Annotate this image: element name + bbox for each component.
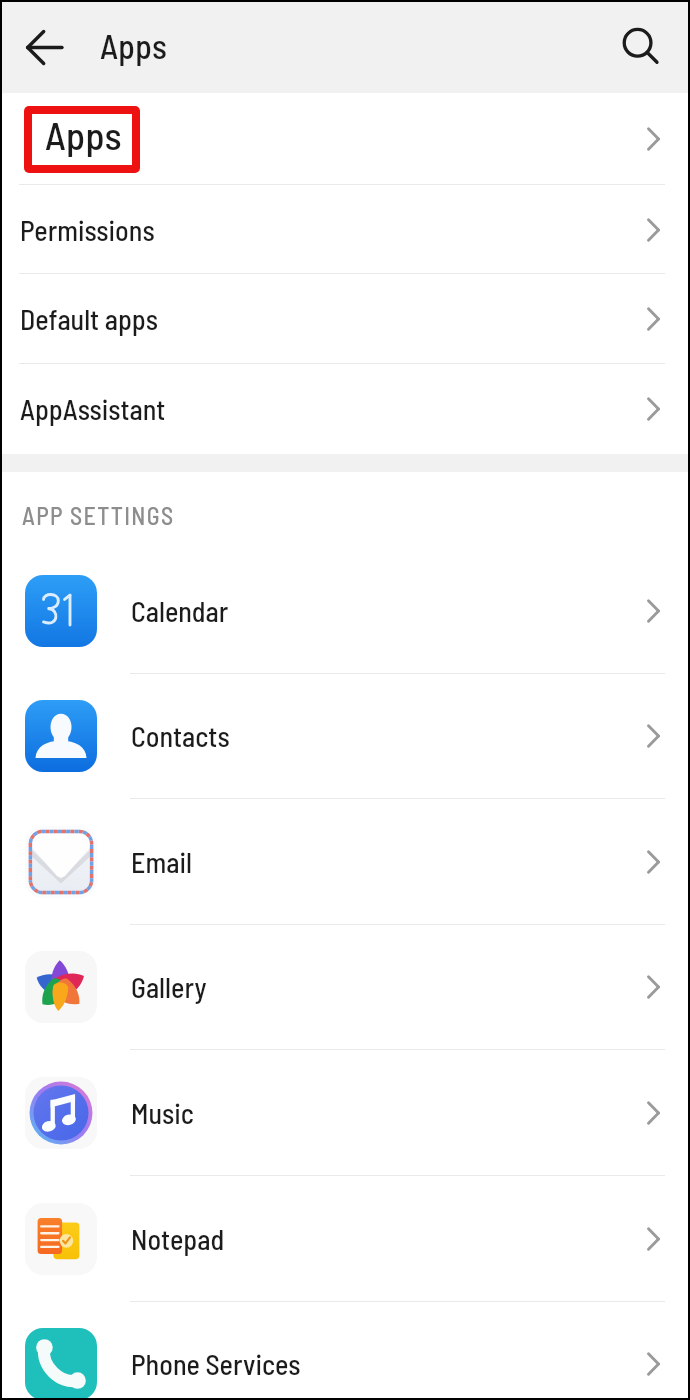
button[interactable]: Search: [604, 11, 676, 83]
staticText: Contacts: [131, 719, 230, 753]
staticText: Email: [131, 845, 192, 879]
button[interactable]: AppAssistant: [0, 364, 690, 454]
button[interactable]: Contacts: [0, 674, 690, 799]
button[interactable]: Notepad: [0, 1176, 690, 1302]
staticText: APP SETTINGS: [22, 501, 175, 530]
staticText: Permissions: [20, 213, 155, 247]
button[interactable]: Email: [0, 799, 690, 925]
staticText: Apps: [45, 111, 122, 158]
button[interactable]: Calendar: [0, 549, 690, 674]
staticText: Music: [131, 1096, 194, 1130]
staticText: Apps: [100, 25, 167, 66]
staticText: Default apps: [20, 302, 158, 336]
staticText: Phone Services: [131, 1347, 301, 1381]
button[interactable]: Back: [8, 11, 80, 83]
button[interactable]: Default apps: [0, 274, 690, 364]
staticText: AppAssistant: [20, 392, 166, 426]
staticText: Notepad: [131, 1222, 225, 1256]
button[interactable]: Gallery: [0, 925, 690, 1050]
staticText: Calendar: [131, 594, 229, 628]
staticText: Gallery: [131, 970, 207, 1004]
button[interactable]: Apps: [0, 93, 690, 185]
button[interactable]: Permissions: [0, 185, 690, 274]
button[interactable]: Music: [0, 1050, 690, 1176]
button[interactable]: Phone Services: [0, 1302, 690, 1400]
